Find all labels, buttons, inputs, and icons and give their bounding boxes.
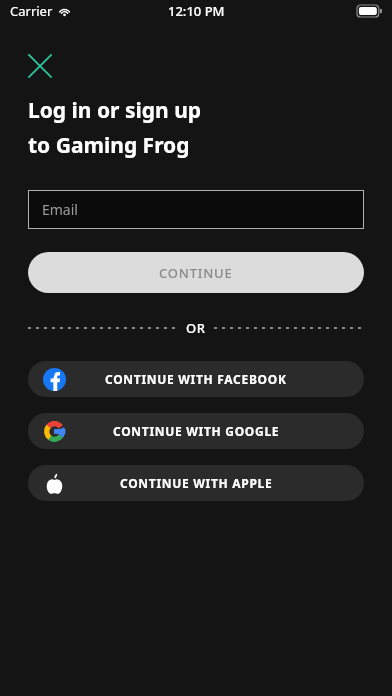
- button[interactable]: CONTINUE: [28, 252, 364, 293]
- staticText: 12:10 PM: [168, 2, 225, 20]
- staticText: Log in or sign up: [28, 96, 202, 125]
- button[interactable]: CONTINUE WITH FACEBOOK: [28, 361, 364, 397]
- staticText: CONTINUE WITH APPLE: [120, 475, 273, 491]
- staticText: OR: [186, 319, 206, 337]
- staticText: CONTINUE: [159, 264, 233, 282]
- staticText: to Gaming Frog: [28, 131, 190, 160]
- button[interactable]: Email: [28, 190, 364, 229]
- staticText: CONTINUE WITH GOOGLE: [113, 423, 280, 439]
- staticText: CONTINUE WITH FACEBOOK: [105, 371, 287, 387]
- staticText: Email: [42, 200, 78, 219]
- button[interactable]: CONTINUE WITH GOOGLE: [28, 413, 364, 449]
- button[interactable]: Close: [20, 46, 60, 86]
- button[interactable]: CONTINUE WITH APPLE: [28, 465, 364, 501]
- staticText: Carrier: [10, 2, 53, 20]
